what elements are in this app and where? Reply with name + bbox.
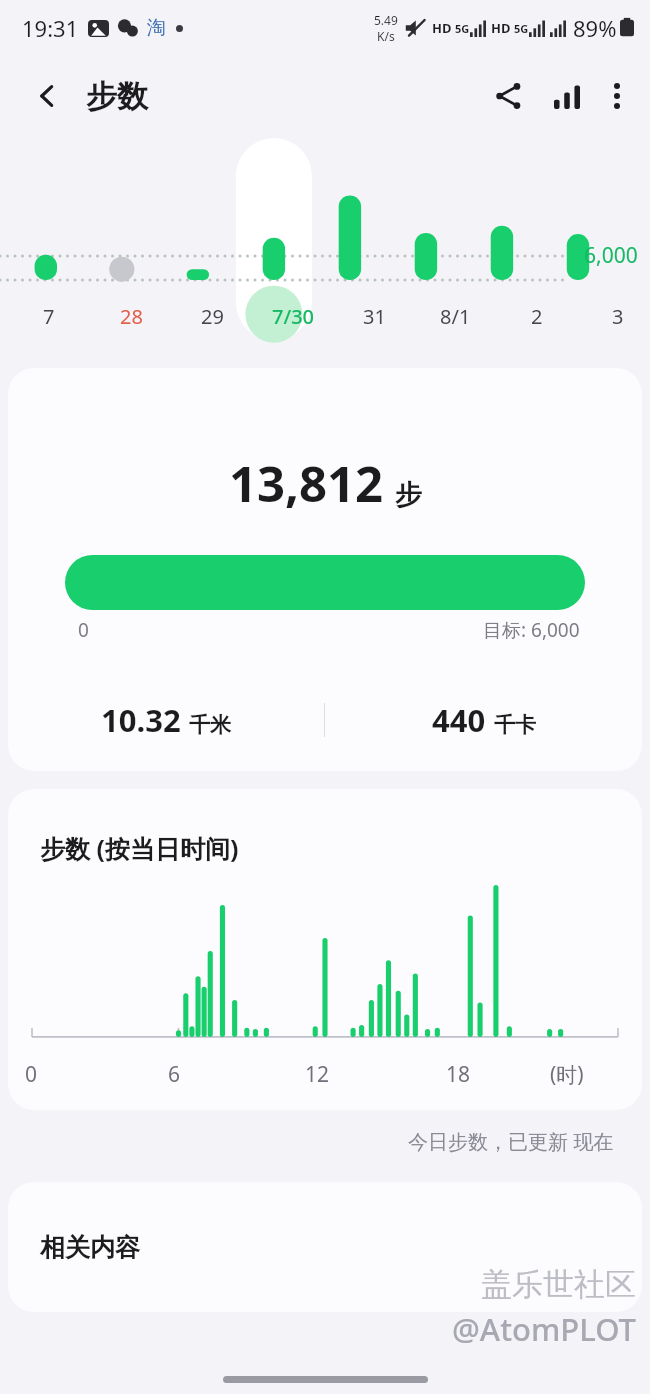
button[interactable]: 13,812 <box>8 368 642 771</box>
staticText: 19:31 <box>22 13 79 43</box>
staticText: 目标: 6,000 <box>483 617 580 643</box>
staticText: @AtomPLOT <box>452 1308 636 1350</box>
staticText: 5.49 <box>374 12 398 28</box>
staticText: K/s <box>377 28 395 44</box>
staticText: 18 <box>446 1060 471 1089</box>
staticText: 步数 <box>86 77 148 116</box>
staticText: (时) <box>550 1060 584 1089</box>
staticText: 7/30 <box>272 303 315 330</box>
staticText: 6 <box>168 1060 181 1089</box>
staticText: 28 <box>120 303 143 330</box>
staticText: 12 <box>305 1060 330 1089</box>
button[interactable]: 相关内容 <box>8 1182 642 1312</box>
staticText: 千卡 <box>494 712 536 738</box>
staticText: 相关内容 <box>40 1232 140 1263</box>
button[interactable]: 8/1 <box>415 136 496 356</box>
staticText: 5G <box>514 21 529 36</box>
staticText: 3 <box>612 303 624 330</box>
button[interactable]: 7 <box>8 136 90 356</box>
button[interactable]: 440 <box>325 695 642 745</box>
button[interactable]: More options <box>598 72 636 120</box>
staticText: 步 <box>395 478 422 512</box>
staticText: 步数 (按当日时间) <box>40 831 239 865</box>
button[interactable]: 28 <box>90 136 172 356</box>
staticText: 29 <box>201 303 224 330</box>
button[interactable]: 2 <box>496 136 577 356</box>
button[interactable]: 10.32 <box>8 695 324 745</box>
staticText: 5G <box>455 21 470 36</box>
staticText: 7 <box>43 303 55 330</box>
staticText: 6,000 <box>584 241 638 270</box>
staticText: 440 <box>432 699 486 741</box>
button[interactable]: 步数 (按当日时间) <box>8 789 642 1110</box>
staticText: 8/1 <box>440 303 471 330</box>
staticText: 2 <box>531 303 543 330</box>
staticText: HD <box>491 19 511 37</box>
staticText: 淘 <box>147 16 166 40</box>
button[interactable]: 29 <box>172 136 253 356</box>
button[interactable]: 7/30 <box>253 136 334 356</box>
button[interactable]: Back <box>20 69 74 123</box>
staticText: 89% <box>573 13 617 43</box>
staticText: 千米 <box>189 712 231 738</box>
staticText: 0 <box>78 617 89 643</box>
staticText: 盖乐世社区 <box>481 1265 636 1304</box>
button[interactable]: Chart view <box>542 71 592 121</box>
staticText: HD <box>432 19 452 37</box>
button[interactable]: 3 <box>577 136 650 356</box>
button[interactable]: Share <box>482 70 534 122</box>
staticText: 0 <box>25 1060 38 1089</box>
button[interactable]: 31 <box>334 136 415 356</box>
staticText: 13,812 <box>229 450 384 517</box>
staticText: 31 <box>363 303 386 330</box>
staticText: 10.32 <box>101 699 181 741</box>
staticText: 今日步数，已更新 现在 <box>408 1128 614 1155</box>
